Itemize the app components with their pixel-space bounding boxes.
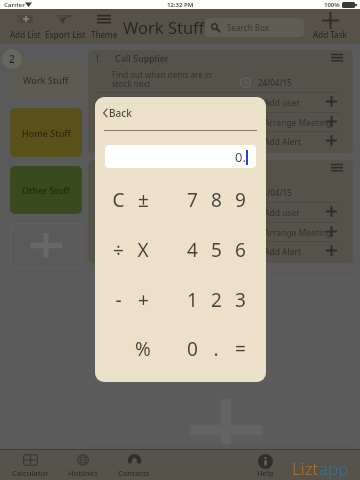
button[interactable]: 0. bbox=[105, 145, 256, 168]
staticText: 3 bbox=[235, 287, 246, 313]
staticText: 12:32 PM bbox=[167, 1, 194, 9]
staticText: Search Box bbox=[227, 22, 270, 33]
staticText: 2 bbox=[9, 52, 15, 66]
staticText: 2 bbox=[211, 287, 222, 313]
button[interactable]: % bbox=[130, 332, 156, 366]
staticText: 1 bbox=[187, 287, 198, 313]
button[interactable]: Search Box bbox=[205, 18, 304, 37]
staticText: - bbox=[115, 287, 122, 313]
button[interactable]: Menu bbox=[331, 54, 343, 61]
button[interactable]: Add List bbox=[8, 9, 42, 43]
staticText: = bbox=[235, 336, 246, 362]
button[interactable]: 8 bbox=[203, 183, 229, 217]
button[interactable]: Add Alert bbox=[88, 131, 353, 150]
button[interactable]: Arrange Meeting bbox=[88, 112, 353, 131]
staticText: . bbox=[213, 336, 219, 362]
staticText: 7 bbox=[187, 187, 198, 213]
button[interactable]: Add task bbox=[88, 274, 353, 444]
button[interactable]: X bbox=[130, 233, 156, 267]
button[interactable]: Calculator bbox=[4, 449, 56, 480]
staticText: ± bbox=[138, 187, 149, 213]
button[interactable]: Other Stuff bbox=[10, 166, 82, 214]
staticText: C bbox=[112, 187, 125, 213]
button[interactable]: - bbox=[105, 283, 131, 317]
staticText: 100% bbox=[324, 1, 340, 9]
staticText: Calculator bbox=[12, 468, 49, 478]
button[interactable]: Add list bbox=[10, 223, 82, 268]
staticText: Hotlinks bbox=[68, 468, 98, 478]
button[interactable]: C bbox=[105, 183, 131, 217]
button[interactable]: 7 bbox=[179, 183, 205, 217]
button[interactable]: + bbox=[130, 283, 156, 317]
staticText: stock next bbox=[112, 78, 151, 89]
button[interactable]: Work Stuff bbox=[10, 62, 82, 98]
button[interactable]: Add Alert bbox=[88, 241, 353, 260]
button[interactable]: 5 bbox=[203, 233, 229, 267]
staticText: Export List bbox=[45, 29, 86, 40]
button[interactable]: Menu bbox=[331, 164, 343, 171]
staticText: 6 bbox=[235, 237, 246, 263]
staticText: Carrier bbox=[4, 1, 25, 9]
button[interactable]: Home Stuff bbox=[10, 108, 82, 157]
staticText: Find out when items are in bbox=[112, 69, 212, 80]
staticText: Work Stuff bbox=[23, 74, 69, 86]
button[interactable]: 9 bbox=[227, 183, 253, 217]
staticText: Email Client bbox=[115, 162, 166, 174]
button[interactable]: 1 bbox=[179, 283, 205, 317]
staticText: Home Stuff bbox=[22, 127, 71, 139]
staticText: X bbox=[137, 237, 149, 263]
button[interactable]: ÷ bbox=[105, 233, 131, 267]
staticText: Other Stuff bbox=[22, 184, 70, 196]
staticText: Add Task bbox=[313, 29, 348, 40]
button[interactable]: 3 bbox=[227, 283, 253, 317]
staticText: Theme bbox=[91, 29, 118, 40]
staticText: 0 bbox=[187, 336, 198, 362]
button[interactable]: Contacts bbox=[108, 449, 160, 480]
button[interactable]: Export List bbox=[44, 9, 86, 43]
button[interactable]: Help bbox=[239, 449, 291, 480]
staticText: app bbox=[319, 457, 349, 480]
staticText: Call Supplier bbox=[115, 52, 169, 64]
staticText: 24/04/15 bbox=[258, 77, 292, 88]
staticText: Help bbox=[257, 468, 274, 478]
button[interactable]: 0 bbox=[179, 332, 205, 366]
button[interactable]: 2 bbox=[203, 283, 229, 317]
staticText: Add Alert bbox=[264, 246, 302, 258]
button[interactable]: ± bbox=[130, 183, 156, 217]
staticText: 4 bbox=[187, 237, 198, 263]
staticText: % bbox=[135, 336, 151, 362]
staticText: + bbox=[138, 287, 149, 313]
staticText: Arrange Meeting bbox=[264, 117, 332, 129]
staticText: 8 bbox=[211, 187, 222, 213]
staticText: 0. bbox=[235, 148, 246, 166]
staticText: 1. bbox=[95, 53, 102, 64]
staticText: last delivery bbox=[112, 188, 157, 199]
staticText: Lizt bbox=[292, 457, 319, 480]
button[interactable]: Add user bbox=[88, 202, 353, 221]
button[interactable]: = bbox=[227, 332, 253, 366]
button[interactable]: Theme bbox=[90, 9, 118, 43]
button[interactable]: Add user bbox=[88, 92, 353, 111]
button[interactable]: Arrange Meeting bbox=[88, 222, 353, 241]
button[interactable]: 6 bbox=[227, 233, 253, 267]
staticText: Add user bbox=[264, 97, 300, 109]
staticText: Add List bbox=[10, 29, 41, 40]
staticText: 9 bbox=[235, 187, 246, 213]
staticText: 5 bbox=[211, 237, 222, 263]
staticText: Add Alert bbox=[264, 136, 302, 148]
button[interactable]: . bbox=[203, 332, 229, 366]
button[interactable]: Hotlinks bbox=[57, 449, 109, 480]
staticText: Work Stuff bbox=[123, 16, 205, 38]
staticText: Back bbox=[109, 106, 132, 120]
staticText: 24/04/15 bbox=[258, 187, 292, 198]
staticText: Contacts bbox=[118, 468, 150, 478]
button[interactable]: 4 bbox=[179, 233, 205, 267]
staticText: ÷ bbox=[113, 237, 124, 263]
button[interactable]: Back bbox=[101, 105, 134, 121]
staticText: Arrange Meeting bbox=[264, 227, 332, 239]
staticText: Add user bbox=[264, 207, 300, 219]
button[interactable]: Add Task bbox=[307, 9, 353, 43]
